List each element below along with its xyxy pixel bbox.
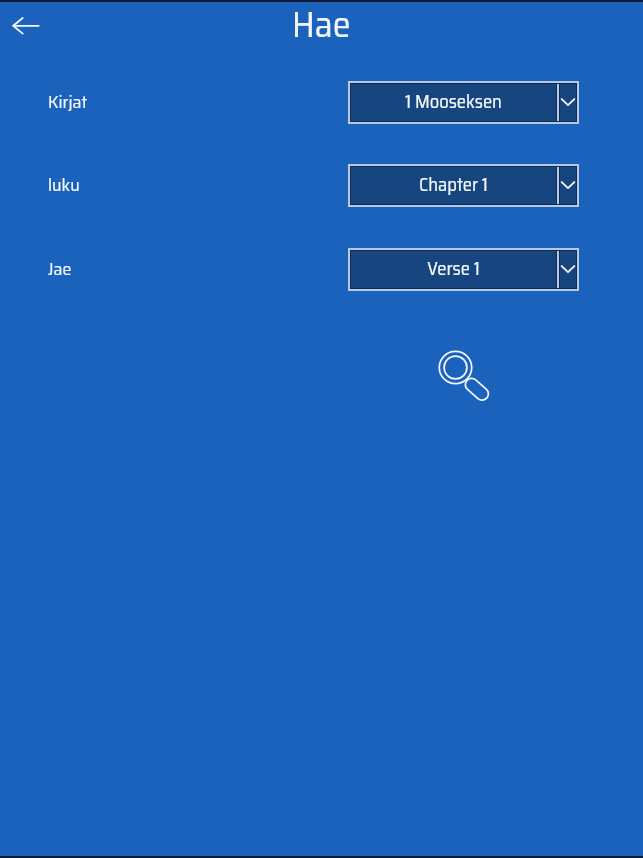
button[interactable]: Chapter 1 — [348, 164, 579, 207]
staticText: Kirjat — [48, 88, 88, 116]
staticText: 1 Mooseksen — [405, 87, 502, 116]
staticText: luku — [48, 171, 80, 199]
button[interactable]: 1 Mooseksen — [348, 81, 579, 124]
button[interactable]: Back — [1, 4, 45, 48]
button[interactable]: Verse 1 — [348, 248, 579, 291]
staticText: Jae — [48, 255, 72, 283]
staticText: Chapter 1 — [419, 170, 488, 199]
staticText: Verse 1 — [427, 254, 480, 283]
staticText: Hae — [292, 0, 351, 53]
button[interactable]: Search — [424, 336, 488, 400]
